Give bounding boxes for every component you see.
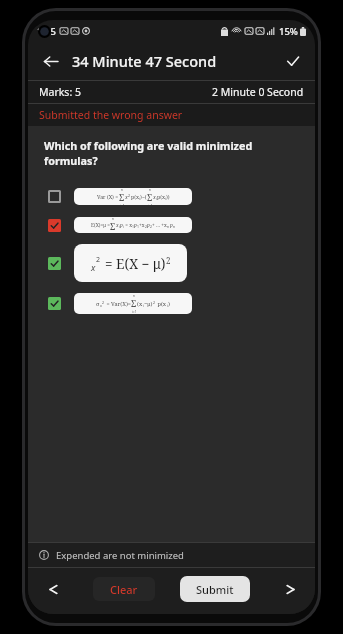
staticText: 2 <box>166 255 171 266</box>
staticText: Submitted the wrong answer <box>39 108 183 122</box>
staticText: p(x <box>156 300 167 308</box>
staticText: i <box>165 196 166 201</box>
staticText: 2 Minute 0 Second <box>212 85 304 99</box>
button[interactable]: Var (X) = <box>28 188 315 205</box>
button[interactable]: Clear <box>93 577 155 601</box>
staticText: −μ) <box>144 300 153 308</box>
staticText: p <box>147 222 150 229</box>
staticText: Σ <box>110 221 116 233</box>
staticText: 15% <box>279 25 298 38</box>
staticText: i=1 <box>132 310 137 314</box>
staticText: = E(X − μ) <box>105 255 166 273</box>
staticText: 2 <box>153 300 156 305</box>
staticText: n <box>112 217 114 221</box>
button[interactable]: Submit <box>180 576 250 602</box>
staticText: p(x <box>157 193 165 200</box>
staticText: i <box>123 224 124 229</box>
staticText: = Var(X)= <box>105 300 131 308</box>
staticText: +x <box>139 222 145 229</box>
staticText: p <box>170 222 173 229</box>
staticText: x <box>100 303 102 308</box>
staticText: 2 <box>96 255 101 265</box>
staticText: i <box>119 224 120 229</box>
staticText: x <box>153 193 156 200</box>
staticText: 2 <box>145 224 147 229</box>
staticText: x <box>91 261 96 273</box>
staticText: x <box>125 193 128 200</box>
staticText: p <box>134 222 137 229</box>
staticText: i <box>167 303 168 308</box>
staticText: Var (X) = <box>97 193 119 200</box>
staticText: ) <box>168 300 170 308</box>
staticText: 2 <box>128 193 131 198</box>
staticText: Σ <box>119 192 125 204</box>
staticText: n <box>149 188 151 192</box>
staticText: 1 <box>132 224 134 229</box>
staticText: Marks: 5 <box>39 85 81 99</box>
staticText: )−( <box>140 193 147 200</box>
staticText: n <box>167 224 170 229</box>
staticText: n <box>121 188 123 192</box>
staticText: + … +x <box>152 222 167 229</box>
staticText: Which of following are valid minimized f… <box>44 138 299 168</box>
staticText: )) <box>166 193 170 200</box>
staticText: Σ <box>147 192 153 204</box>
staticText: n <box>173 224 176 229</box>
staticText: 1 <box>137 224 139 229</box>
staticText: 34 Minute 47 Second <box>72 51 217 71</box>
staticText: (x <box>137 300 143 308</box>
button[interactable]: σ <box>28 293 315 314</box>
button[interactable]: Next question <box>275 574 305 604</box>
button[interactable]: E(X)=μ = <box>28 217 315 233</box>
staticText: Σ <box>131 298 137 310</box>
staticText: i <box>139 196 140 201</box>
button[interactable]: Previous question <box>38 574 68 604</box>
staticText: 1:25 <box>37 25 56 38</box>
button[interactable]: x <box>28 244 315 282</box>
staticText: n <box>133 294 135 298</box>
staticText: σ <box>96 300 100 308</box>
staticText: E(X)=μ = <box>91 222 110 229</box>
staticText: i=1 <box>148 204 153 205</box>
staticText: i=1 <box>120 204 125 205</box>
staticText: = x <box>124 222 132 229</box>
staticText: x <box>116 222 119 229</box>
staticText: Expended are not minimized <box>56 549 184 562</box>
button[interactable]: Back <box>36 47 64 75</box>
staticText: p(x <box>131 193 139 200</box>
staticText: p <box>120 222 123 229</box>
staticText: Clear <box>110 582 138 597</box>
button[interactable]: Done <box>279 47 307 75</box>
staticText: 2 <box>102 300 105 305</box>
staticText: i <box>143 303 144 308</box>
staticText: Submit <box>196 582 234 597</box>
staticText: i <box>156 196 157 201</box>
staticText: 2 <box>150 224 152 229</box>
